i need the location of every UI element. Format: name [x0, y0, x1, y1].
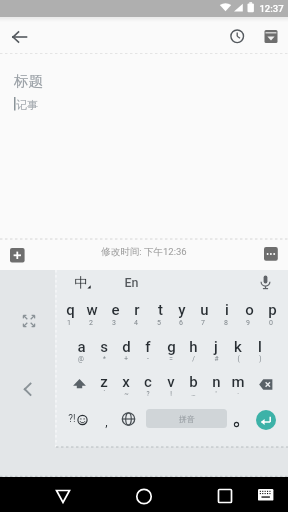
button[interactable]: ?!	[59, 409, 85, 429]
staticText: 6	[179, 319, 183, 327]
button[interactable]: o	[238, 299, 260, 321]
staticText: l	[258, 338, 262, 356]
staticText: c	[144, 373, 152, 391]
staticText: b	[189, 373, 198, 391]
button[interactable]	[116, 407, 141, 432]
button[interactable]	[228, 416, 245, 433]
button[interactable]: q	[59, 299, 81, 321]
staticText: t	[158, 301, 163, 319]
button[interactable]	[2, 20, 35, 53]
button[interactable]: l	[249, 336, 271, 358]
staticText: x	[122, 373, 130, 391]
button[interactable]: z	[93, 371, 115, 393]
staticText: 9	[246, 319, 250, 327]
button[interactable]	[252, 483, 280, 507]
staticText: v	[167, 373, 175, 391]
button[interactable]: s	[93, 336, 115, 358]
staticText: p	[268, 301, 277, 319]
button[interactable]: f	[137, 336, 159, 358]
button[interactable]: j	[205, 336, 227, 358]
button[interactable]: a	[70, 336, 92, 358]
button[interactable]	[264, 247, 278, 261]
staticText: 1	[67, 319, 71, 327]
staticText: u	[200, 301, 209, 319]
staticText: )	[259, 355, 262, 363]
staticText: /	[192, 355, 195, 363]
staticText: s	[100, 338, 108, 356]
staticText: o	[245, 301, 254, 319]
staticText: ~	[124, 390, 129, 398]
button[interactable]: h	[182, 336, 204, 358]
staticText: 拼音	[179, 414, 195, 424]
staticText: z	[100, 373, 108, 391]
staticText: ·	[237, 390, 239, 398]
button[interactable]: p	[261, 299, 283, 321]
button[interactable]: d	[115, 336, 137, 358]
button[interactable]	[258, 24, 283, 49]
staticText: h	[189, 338, 198, 356]
staticText: =	[169, 355, 173, 363]
staticText: …	[191, 390, 196, 398]
button[interactable]: c	[137, 371, 159, 393]
staticText: 7	[201, 319, 205, 327]
staticText: d	[122, 338, 131, 356]
staticText: 记事	[16, 98, 38, 112]
staticText: 4	[134, 319, 138, 327]
staticText: ,	[105, 415, 108, 429]
button[interactable]: y	[171, 299, 193, 321]
staticText: '	[215, 390, 217, 398]
button[interactable]	[67, 372, 92, 397]
staticText: ?	[146, 390, 150, 398]
staticText: j	[214, 338, 218, 356]
button[interactable]: w	[81, 299, 103, 321]
button[interactable]	[17, 309, 41, 333]
staticText: i	[225, 301, 229, 319]
staticText: #	[214, 355, 219, 363]
button[interactable]	[43, 478, 83, 512]
staticText: n	[212, 373, 221, 391]
staticText: 修改时间: 下午12:36	[101, 246, 187, 258]
button[interactable]: i	[216, 299, 238, 321]
button[interactable]: u	[193, 299, 215, 321]
button[interactable]	[15, 377, 40, 402]
button[interactable]	[124, 478, 164, 512]
staticText: 8	[224, 319, 228, 327]
staticText: q	[66, 301, 75, 319]
button[interactable]: g	[160, 336, 182, 358]
button[interactable]: e	[104, 299, 126, 321]
button[interactable]: n	[205, 371, 227, 393]
staticText: 12:37	[259, 3, 284, 14]
button[interactable]: k	[227, 336, 249, 358]
staticText: w	[86, 301, 98, 319]
button[interactable]: En	[114, 271, 148, 293]
staticText: 中	[74, 274, 88, 291]
staticText: a	[77, 338, 86, 356]
staticText: *	[103, 355, 106, 363]
button[interactable]	[225, 24, 250, 49]
button[interactable]: b	[182, 371, 204, 393]
staticText: g	[167, 338, 176, 356]
button[interactable]	[256, 410, 276, 430]
button[interactable]: ,	[97, 412, 115, 432]
button[interactable]	[253, 271, 278, 295]
button[interactable]: t	[149, 299, 171, 321]
button[interactable]: v	[160, 371, 182, 393]
staticText: !	[170, 390, 172, 398]
button[interactable]	[10, 248, 25, 263]
button[interactable]: 中	[66, 271, 96, 293]
staticText: f	[145, 338, 151, 356]
staticText: m	[231, 373, 245, 391]
button[interactable]: m	[227, 371, 249, 393]
button[interactable]: x	[115, 371, 137, 393]
staticText: En	[124, 275, 139, 290]
staticText: (	[237, 355, 240, 363]
button[interactable]	[205, 478, 245, 512]
staticText: k	[234, 338, 242, 356]
button[interactable]: 拼音	[146, 409, 227, 428]
button[interactable]: r	[126, 299, 148, 321]
staticText: 0	[269, 319, 273, 327]
staticText: e	[111, 301, 120, 319]
staticText: y	[178, 301, 186, 319]
staticText: @	[78, 355, 84, 363]
button[interactable]	[253, 372, 279, 397]
